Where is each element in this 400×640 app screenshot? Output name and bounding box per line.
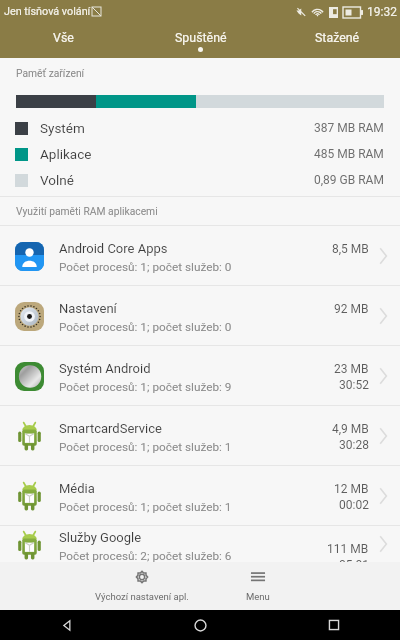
staticText: 12 MB <box>334 482 369 496</box>
button[interactable]: Stažené <box>300 24 375 58</box>
staticText: Android Core Apps <box>59 241 168 256</box>
button[interactable]: Menu <box>200 562 316 610</box>
staticText: Menu <box>246 591 270 602</box>
staticText: 92 MB <box>334 302 369 316</box>
staticText: 111 MB <box>327 542 369 556</box>
button[interactable]: Recents <box>267 610 400 640</box>
staticText: 4,9 MB <box>332 422 369 436</box>
button[interactable]: Média <box>0 466 400 525</box>
button[interactable]: Android Core Apps <box>0 226 400 285</box>
staticText: Paměť zařízení <box>16 67 85 79</box>
staticText: Spuštěné <box>175 30 227 45</box>
staticText: Výchozí nastavení apl. <box>95 591 189 602</box>
staticText: Počet procesů: 1; počet služeb: 9 <box>59 380 232 394</box>
staticText: Jen tísňová volání <box>4 5 91 18</box>
staticText: 30:52 <box>339 378 369 392</box>
staticText: Počet procesů: 1; počet služeb: 1 <box>59 440 232 454</box>
staticText: Systém Android <box>59 361 151 376</box>
staticText: Služby Google <box>59 530 142 545</box>
staticText: 8,5 MB <box>332 242 369 256</box>
staticText: 19:32 <box>367 5 397 19</box>
staticText: Aplikace <box>40 146 92 162</box>
button[interactable]: Home <box>134 610 267 640</box>
staticText: Média <box>59 481 95 496</box>
staticText: Systém <box>40 120 85 136</box>
staticText: Počet procesů: 1; počet služeb: 0 <box>59 260 232 274</box>
button[interactable]: Vše <box>26 24 101 58</box>
button[interactable]: Aplikace <box>0 141 400 167</box>
staticText: 05:01 <box>339 558 369 562</box>
staticText: Stažené <box>315 30 360 45</box>
button[interactable]: Spuštěné <box>163 24 238 58</box>
button[interactable]: Back <box>0 610 134 640</box>
button[interactable]: SmartcardService <box>0 406 400 465</box>
staticText: Vše <box>53 30 74 45</box>
staticText: Počet procesů: 2; počet služeb: 6 <box>59 549 232 563</box>
button[interactable]: Výchozí nastavení apl. <box>84 562 200 610</box>
button[interactable]: Systém <box>0 115 400 141</box>
staticText: 485 MB RAM <box>314 147 384 161</box>
staticText: Využití paměti RAM aplikacemi <box>16 205 158 217</box>
button[interactable]: Volné <box>0 167 400 193</box>
staticText: Počet procesů: 1; počet služeb: 1 <box>59 500 232 514</box>
staticText: 0,89 GB RAM <box>314 173 384 187</box>
staticText: Nastavení <box>59 301 117 316</box>
staticText: SmartcardService <box>59 421 162 436</box>
staticText: 00:02 <box>339 498 369 512</box>
staticText: 30:28 <box>339 438 369 452</box>
button[interactable]: Systém Android <box>0 346 400 405</box>
staticText: Počet procesů: 1; počet služeb: 0 <box>59 320 232 334</box>
button[interactable]: Služby Google <box>0 526 400 562</box>
staticText: Volné <box>40 172 74 188</box>
staticText: 387 MB RAM <box>314 121 384 135</box>
button[interactable]: Nastavení <box>0 286 400 345</box>
staticText: 23 MB <box>334 362 369 376</box>
